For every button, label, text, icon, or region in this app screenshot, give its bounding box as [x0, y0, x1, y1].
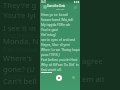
staticText: see in eyes of end end	[41, 37, 76, 41]
staticText: gone? (U	[3, 64, 35, 74]
staticText: They're g	[3, 0, 37, 10]
staticText: happened	[3, 30, 40, 40]
staticText: You're gosi	[41, 27, 58, 31]
staticText: Dana the Data Double Over	[47, 4, 74, 8]
staticText: When 'tu wo Thatsy kapo	[41, 47, 80, 51]
staticText: Hayes, liker di yeni	[41, 42, 70, 46]
staticText: em all	[82, 74, 104, 84]
button[interactable]: Dana the Data Double Over	[40, 3, 80, 11]
staticText: 9:41	[41, 0, 47, 3]
staticText: Where's	[3, 53, 32, 63]
staticText: Fort befere you tin Hosi	[41, 57, 78, 61]
staticText: Sosare band (Ma,sid)	[41, 17, 74, 21]
staticText: Sosi week ull.	[41, 67, 62, 71]
staticText: Monda, N	[3, 36, 39, 46]
button[interactable]: Record	[56, 75, 62, 81]
staticText: Can't beli	[3, 76, 37, 86]
staticText: 45m ago	[56, 8, 65, 11]
staticText: I see it in	[3, 23, 36, 33]
staticText: agree	[82, 56, 103, 66]
staticText: pose (1916,)	[41, 52, 60, 56]
button[interactable]: Switch camera	[71, 75, 76, 80]
staticText: Hoss yo ne bensil	[41, 12, 68, 16]
staticText: You're lyi	[3, 10, 36, 20]
staticText: Someone	[3, 71, 38, 81]
staticText: My tapjda F0Ro wh Fa.wid	[41, 22, 80, 26]
staticText: Hei'mtog!	[41, 32, 56, 36]
staticText: Why sit KiFoss Tis Did' in	[41, 62, 79, 66]
